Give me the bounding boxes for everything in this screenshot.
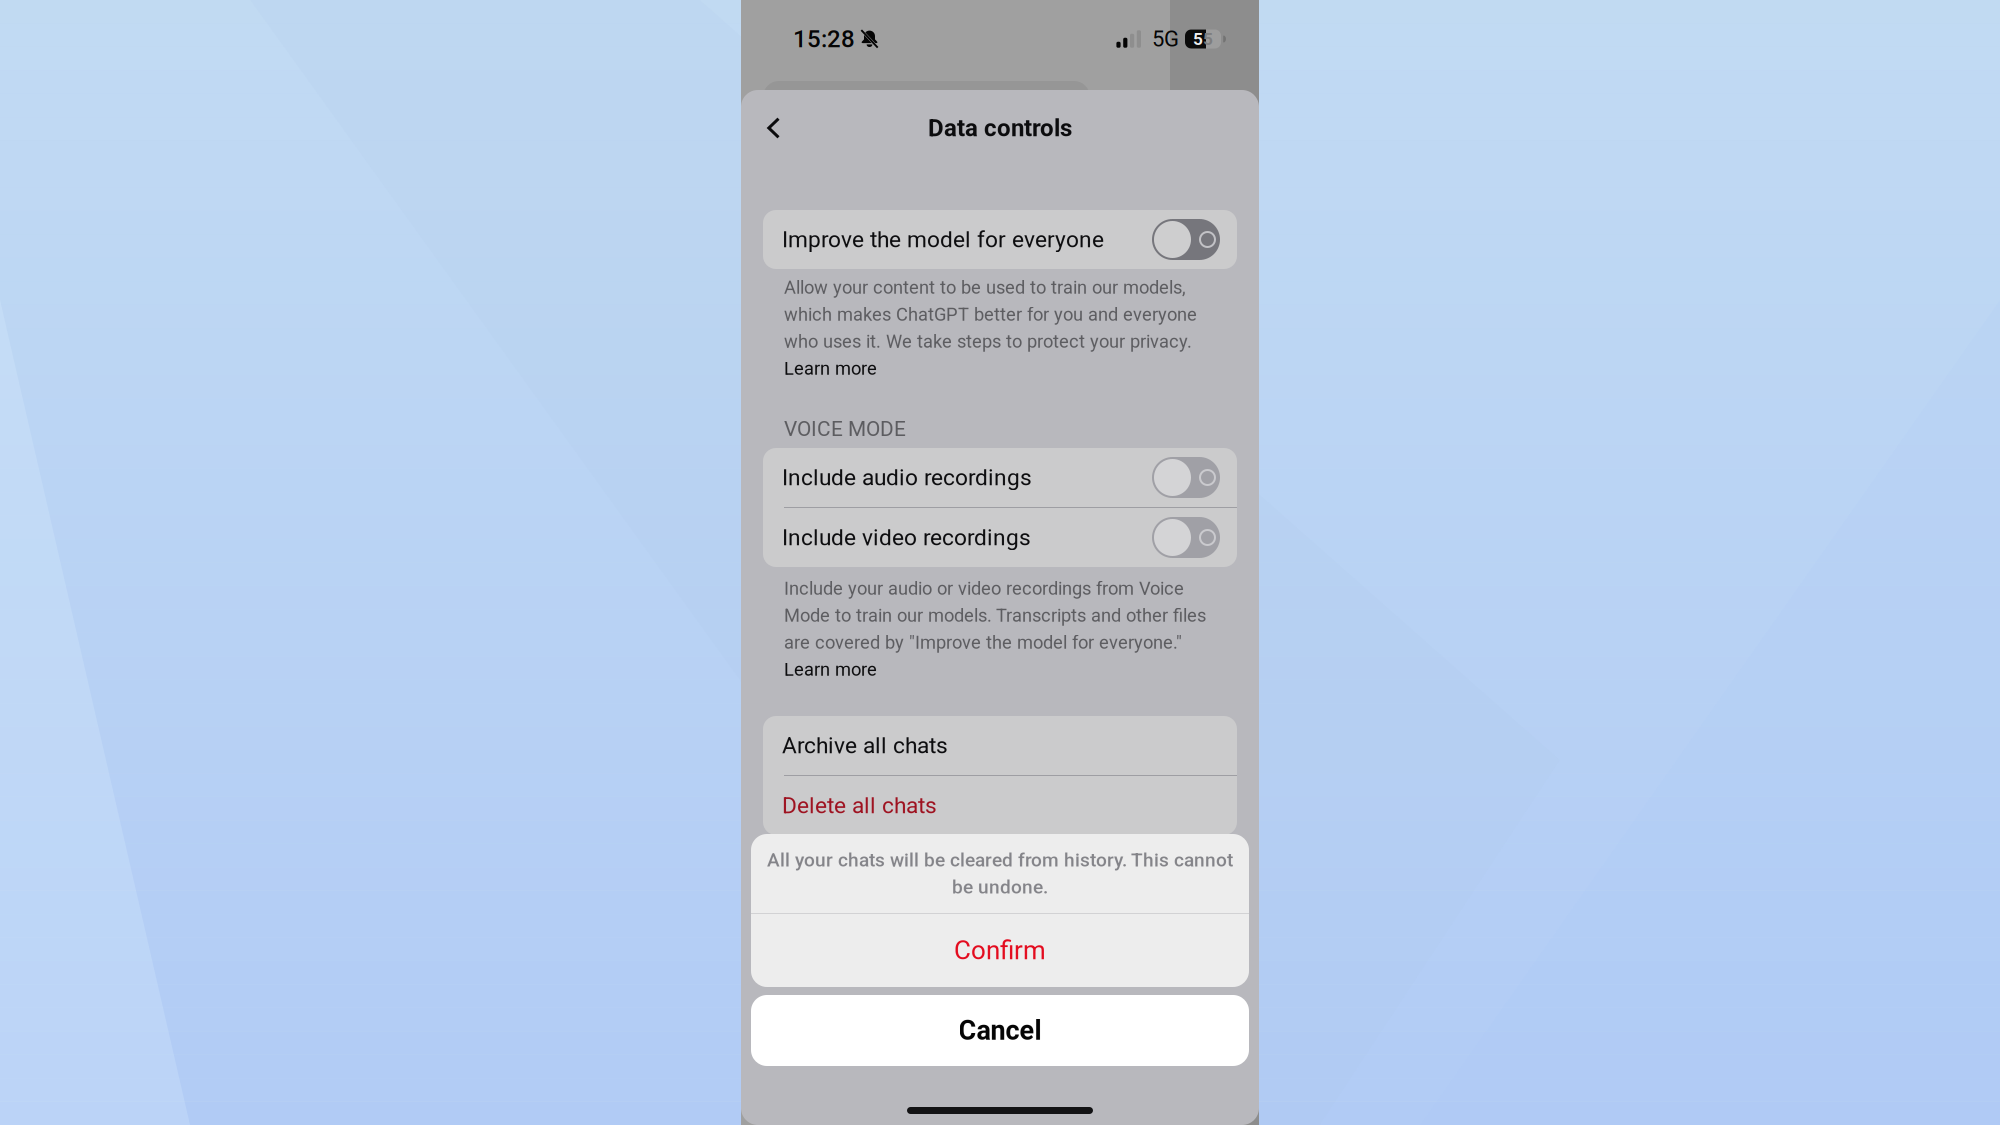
staticText: Cancel	[958, 1015, 1041, 1046]
staticText: Archive all chats	[782, 732, 948, 759]
button[interactable]: Learn more	[784, 656, 1259, 683]
staticText: Improve the model for everyone	[782, 226, 1104, 253]
staticText: Include video recordings	[782, 524, 1031, 551]
staticText: Include your audio or video recordings f…	[784, 578, 1184, 599]
button[interactable]: Learn more	[784, 355, 1259, 382]
staticText: who uses it. We take steps to protect yo…	[784, 331, 1192, 352]
staticText: Learn more	[784, 358, 877, 379]
button[interactable]: Archive all chats	[763, 716, 1237, 775]
staticText: 5	[1203, 29, 1213, 49]
staticText: Delete all chats	[782, 792, 937, 819]
staticText: Allow your content to be used to train o…	[784, 277, 1186, 298]
staticText: 5G	[1152, 26, 1179, 52]
staticText: which makes ChatGPT better for you and e…	[784, 304, 1197, 325]
staticText: Include audio recordings	[782, 464, 1032, 491]
button[interactable]: Delete all chats	[763, 776, 1237, 835]
staticText: Confirm	[954, 935, 1046, 966]
button[interactable]: Cancel	[751, 995, 1249, 1066]
button[interactable]: Back	[753, 105, 795, 151]
staticText: VOICE MODE	[784, 417, 906, 441]
staticText: Learn more	[784, 659, 877, 680]
staticText: are covered by "Improve the model for ev…	[784, 632, 1182, 653]
staticText: All your chats will be cleared from hist…	[767, 849, 1233, 871]
staticText: 5	[1193, 29, 1203, 49]
staticText: Data controls	[928, 114, 1072, 142]
staticText: be undone.	[952, 876, 1048, 898]
button[interactable]: Include video recordings	[763, 508, 1237, 567]
staticText: 15:28	[793, 25, 855, 53]
button[interactable]: Improve the model for everyone	[763, 210, 1237, 269]
button[interactable]: Include audio recordings	[763, 448, 1237, 507]
button[interactable]: Confirm	[751, 914, 1249, 987]
staticText: Mode to train our models. Transcripts an…	[784, 605, 1206, 626]
